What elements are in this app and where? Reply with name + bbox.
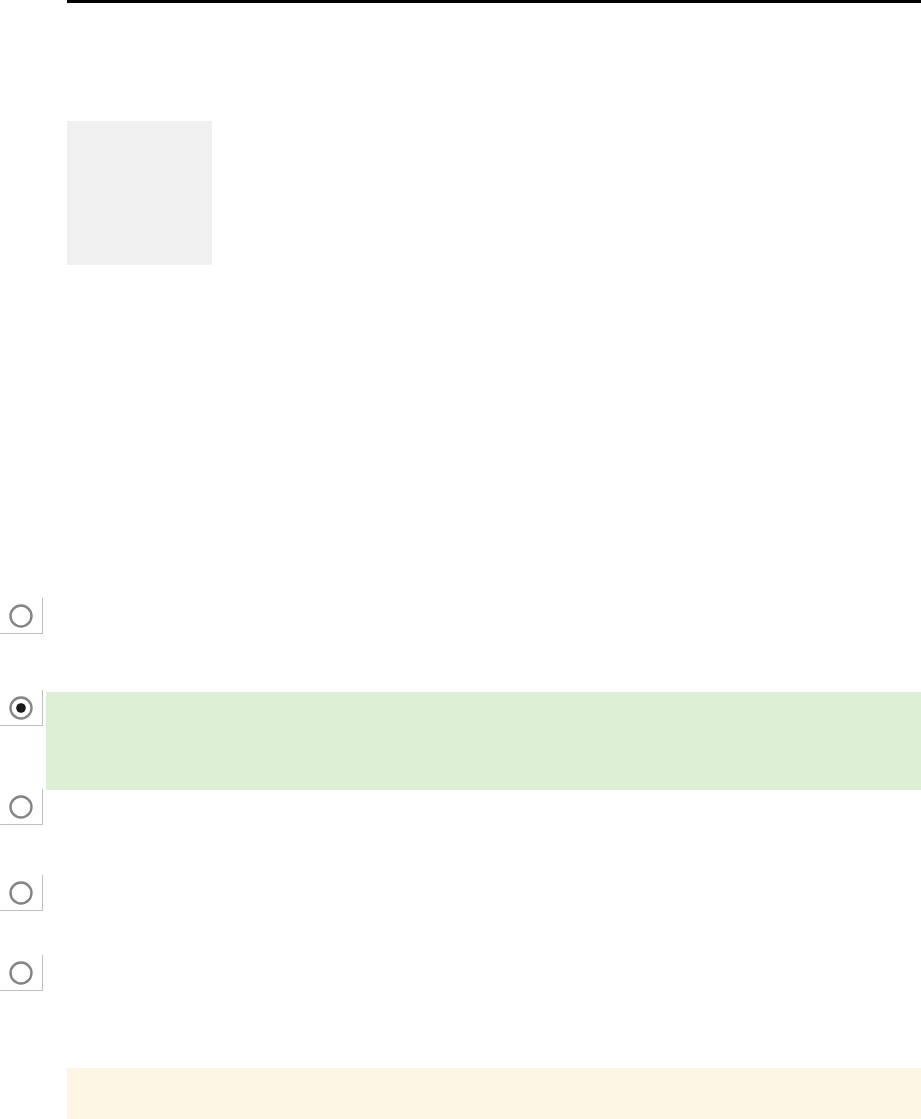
button[interactable]: Option 4 [0,875,43,911]
button[interactable]: Option 1 [0,598,43,634]
button[interactable]: Option 3 [0,789,43,825]
button[interactable]: Option 2, selected [0,690,43,726]
button[interactable]: Option 5 [0,955,43,991]
